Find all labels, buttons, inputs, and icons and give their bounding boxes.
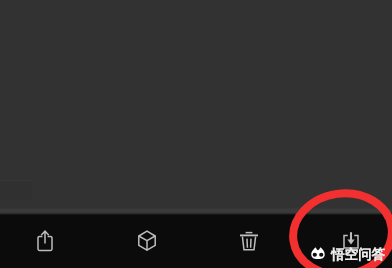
staticText: 悟空问答: [331, 246, 385, 263]
button[interactable]: Download: [331, 221, 371, 261]
button[interactable]: Delete: [229, 221, 269, 261]
button[interactable]: 3D view: [127, 220, 167, 260]
button[interactable]: Share: [25, 220, 65, 260]
